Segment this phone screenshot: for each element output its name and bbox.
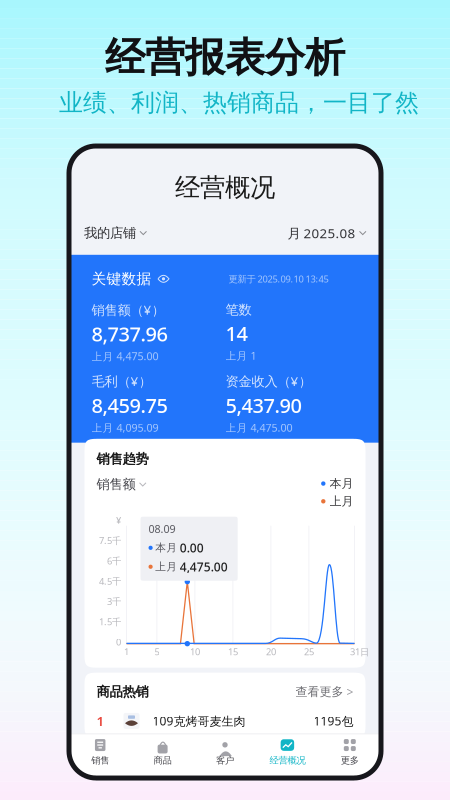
- staticText: 6千: [107, 555, 121, 567]
- staticText: 20: [266, 645, 276, 658]
- staticText: 更新于 2025.09.10 13:45: [228, 273, 328, 285]
- button[interactable]: 关键数据: [91, 270, 169, 288]
- staticText: 业绩、利润、热销商品，一目了然: [59, 88, 419, 118]
- button[interactable]: 客户: [194, 733, 256, 778]
- button[interactable]: 销售: [69, 733, 131, 778]
- staticText: 关键数据: [91, 270, 151, 288]
- staticText: 销售额（¥）: [91, 301, 164, 318]
- staticText: 上月 4,095.09: [91, 420, 158, 435]
- staticText: 1: [124, 645, 129, 658]
- staticText: 10: [190, 645, 200, 658]
- staticText: 经营概况: [175, 172, 275, 203]
- button[interactable]: 月 2025.08: [287, 224, 366, 242]
- staticText: 笔数: [225, 301, 251, 318]
- staticText: 商品热销: [96, 684, 148, 700]
- staticText: 上月 4,475.00: [91, 349, 158, 363]
- staticText: 上月 4,475.00: [225, 420, 292, 435]
- staticText: ¥: [116, 514, 121, 526]
- staticText: 月 2025.08: [287, 224, 355, 242]
- staticText: 1.5千: [99, 615, 121, 628]
- staticText: 08.09: [148, 522, 175, 536]
- staticText: 4.5千: [99, 575, 121, 587]
- staticText: 资金收入（¥）: [225, 372, 311, 390]
- staticText: 0.00: [180, 540, 204, 556]
- staticText: 14: [225, 320, 247, 346]
- staticText: 5: [154, 645, 159, 658]
- staticText: 31日: [350, 645, 369, 658]
- staticText: 8,737.96: [91, 320, 167, 347]
- button[interactable]: 查看更多: [295, 684, 353, 700]
- staticText: 上月: [329, 494, 353, 509]
- staticText: 经营报表分析: [105, 33, 345, 82]
- button[interactable]: 销售额: [96, 476, 146, 493]
- staticText: 本月: [329, 476, 353, 491]
- staticText: 109克烤哥麦生肉: [152, 713, 245, 729]
- staticText: 更多: [341, 754, 359, 766]
- button[interactable]: 我的店铺: [84, 225, 146, 241]
- button[interactable]: 更多: [319, 733, 381, 778]
- staticText: 本月: [155, 541, 177, 554]
- staticText: 毛利（¥）: [91, 372, 151, 390]
- staticText: 我的店铺: [84, 225, 136, 241]
- staticText: 销售额: [96, 476, 135, 493]
- staticText: 销售趋势: [96, 451, 148, 467]
- staticText: 8,459.75: [91, 392, 167, 419]
- staticText: 15: [228, 645, 238, 658]
- staticText: 4,475.00: [180, 559, 228, 575]
- staticText: 3千: [107, 595, 121, 608]
- staticText: 1195包: [313, 713, 353, 729]
- staticText: 商品: [154, 754, 172, 766]
- staticText: 上月: [155, 560, 177, 573]
- staticText: >: [346, 684, 353, 700]
- button[interactable]: 商品: [131, 733, 194, 778]
- staticText: 1: [96, 712, 104, 730]
- staticText: 25: [304, 645, 314, 658]
- staticText: 经营概况: [269, 754, 305, 766]
- staticText: 客户: [216, 754, 234, 766]
- staticText: 5,437.90: [225, 392, 301, 419]
- staticText: 0: [116, 636, 121, 648]
- staticText: 查看更多: [295, 684, 343, 699]
- staticText: 7.5千: [99, 534, 121, 547]
- staticText: 上月 1: [225, 348, 256, 363]
- button[interactable]: 经营概况: [256, 733, 319, 778]
- staticText: 销售: [91, 754, 109, 766]
